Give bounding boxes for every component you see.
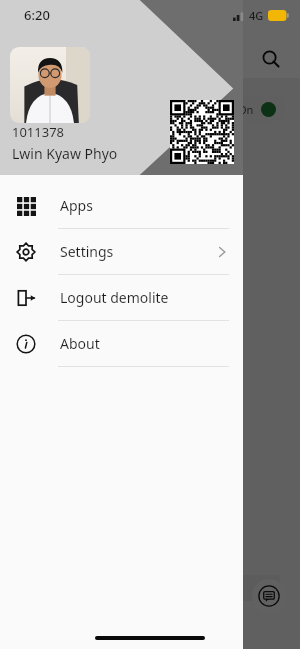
button[interactable]: Logout demolite [0,275,243,320]
button[interactable]: Search [254,42,288,76]
button[interactable]: QR code [170,100,234,164]
staticText: 4G [249,8,264,23]
button[interactable]: Chat [252,579,286,613]
button[interactable]: About [0,321,243,366]
staticText: Logout demolite [60,288,169,307]
button[interactable]: Settings [0,229,243,274]
staticText: Lwin Kyaw Phyo [12,144,118,163]
staticText: Settings [60,242,114,261]
staticText: 6:20 [24,6,50,24]
button[interactable]: On [228,96,286,122]
button[interactable]: Profile photo [10,47,90,123]
button[interactable]: Apps [0,183,243,228]
staticText: On [238,102,254,117]
staticText: Apps [60,196,93,215]
staticText: 1011378 [12,123,65,141]
staticText: About [60,334,100,353]
